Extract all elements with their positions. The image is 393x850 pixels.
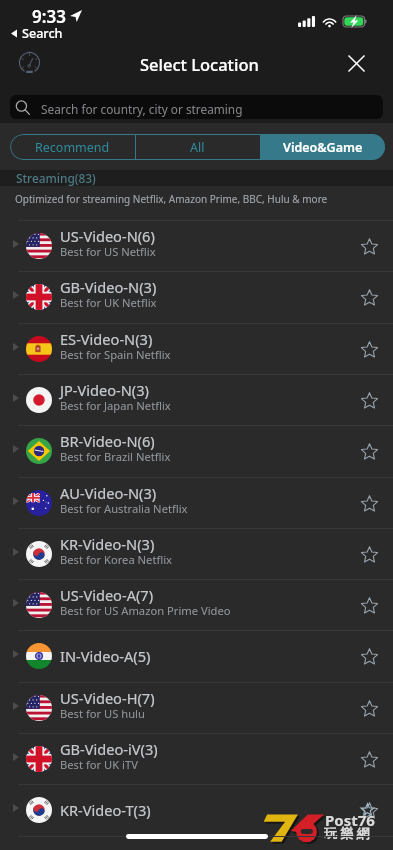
staticText: Best for US Amazon Prime Video [60,603,231,618]
button[interactable]: IN-Video-A(5) [0,630,393,681]
staticText: KR-Video-N(3) [60,534,155,554]
staticText: Best for Spain Netflix [60,347,171,362]
button[interactable]: Favorite [354,334,384,364]
button[interactable]: Favorite [354,590,384,620]
staticText: GB-Video-N(3) [60,277,157,297]
staticText: Best for US hulu [60,706,145,721]
staticText: US-Video-A(7) [60,585,154,605]
staticText: Search [22,25,63,42]
button[interactable]: GB-Video-N(3) [0,271,393,322]
staticText: GB-Video-iV(3) [60,739,158,759]
staticText: Best for Japan Netflix [60,398,171,413]
staticText: Best for UK Netflix [60,295,157,310]
button[interactable]: US-Video-H(7) [0,682,393,733]
staticText: All [190,139,205,156]
staticText: Search for country, city or streaming [41,101,243,117]
staticText: JP-Video-N(3) [60,380,149,400]
button[interactable]: KR-Video-N(3) [0,528,393,579]
staticText: Best for Korea Netflix [60,552,173,567]
staticText: AU-Video-N(3) [60,483,157,503]
button[interactable]: KR-Video-T(3) [0,784,393,835]
staticText: 玩 樂 網 [324,824,370,842]
button[interactable]: BR-Video-N(6) [0,425,393,476]
button[interactable]: Favorite [354,282,384,312]
button[interactable]: Speed test [13,46,45,78]
staticText: BR-Video-N(6) [60,431,155,451]
button[interactable]: Recommend [10,134,135,160]
button[interactable]: JP-Video-N(3) [0,374,393,425]
staticText: Best for Australia Netflix [60,501,188,516]
button[interactable]: US-Video-N(6) [0,220,393,271]
button[interactable]: Favorite [354,436,384,466]
button[interactable]: Favorite [354,385,384,415]
button[interactable]: Video&Game [260,134,385,160]
button[interactable]: Close [340,47,372,79]
staticText: KR-Video-T(3) [60,800,151,820]
button[interactable]: Favorite [354,488,384,518]
staticText: US-Video-H(7) [60,688,155,708]
button[interactable]: Favorite [354,795,384,825]
button[interactable]: Favorite [354,641,384,671]
button[interactable]: Search for country, city or streaming [10,95,383,119]
staticText: Best for UK iTV [60,757,138,772]
staticText: Best for US Netflix [60,244,156,259]
button[interactable]: GB-Video-iV(3) [0,733,393,784]
button[interactable]: Favorite [354,693,384,723]
staticText: Best for Brazil Netflix [60,449,171,464]
button[interactable]: ES-Video-N(3) [0,323,393,374]
button[interactable]: Favorite [354,539,384,569]
staticText: 9:33 [32,5,66,28]
staticText: US-Video-N(6) [60,226,155,246]
staticText: Optimized for streaming Netflix, Amazon … [15,192,328,206]
staticText: Video&Game [283,139,363,156]
staticText: Select Location [140,53,259,75]
button[interactable]: US-Video-A(7) [0,579,393,630]
button[interactable]: All [135,134,260,160]
button[interactable]: Favorite [354,231,384,261]
staticText: Post76 [325,810,375,830]
button[interactable]: Search [11,25,63,42]
staticText: IN-Video-A(5) [60,646,151,666]
button[interactable]: Favorite [354,744,384,774]
staticText: Recommend [35,139,110,156]
staticText: Streaming(83) [16,170,96,186]
button[interactable]: AU-Video-N(3) [0,477,393,528]
staticText: ES-Video-N(3) [60,329,153,349]
